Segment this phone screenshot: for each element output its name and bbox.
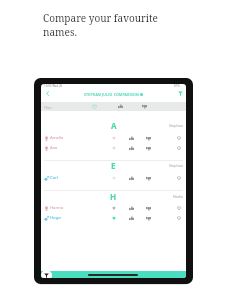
- button[interactable]: Dislike: [143, 143, 153, 153]
- button[interactable]: Favourite: [109, 203, 119, 213]
- button[interactable]: Carl: [41, 173, 186, 183]
- button[interactable]: Shortlist: [174, 173, 184, 183]
- button[interactable]: Shortlist: [174, 213, 184, 223]
- staticText: Nadia: [173, 194, 183, 199]
- button[interactable]: Shortlist: [174, 133, 184, 143]
- button[interactable]: Sort by likes: [115, 102, 125, 111]
- button[interactable]: Sort: [89, 102, 99, 111]
- button[interactable]: Dislike: [143, 213, 153, 223]
- button[interactable]: Hanna: [41, 203, 186, 213]
- button[interactable]: Shortlist: [174, 143, 184, 153]
- button[interactable]: Dislike: [143, 133, 153, 143]
- button[interactable]: Like: [126, 143, 136, 153]
- staticText: E: [111, 160, 116, 171]
- button[interactable]: Favourite: [109, 173, 119, 183]
- button[interactable]: Favourite: [109, 133, 119, 143]
- staticText: Ava: [50, 145, 58, 151]
- staticText: Stephan: [169, 163, 183, 168]
- staticText: Stephan: [169, 123, 183, 128]
- button[interactable]: Like: [126, 213, 136, 223]
- button[interactable]: Ava: [41, 143, 186, 153]
- staticText: STEPHAN JULIO COMPARISON: [84, 92, 139, 97]
- button[interactable]: Amelia: [41, 133, 186, 143]
- button[interactable]: Hugo: [41, 213, 186, 223]
- staticText: 10:03 Wed 26: [44, 84, 63, 88]
- staticText: Hanna: [50, 205, 63, 211]
- staticText: Hugo: [50, 215, 61, 221]
- button[interactable]: Shortlist: [174, 203, 184, 213]
- staticText: 81%: [174, 84, 180, 88]
- button[interactable]: Favourite: [109, 213, 119, 223]
- staticText: A: [111, 120, 117, 131]
- button[interactable]: Like: [126, 173, 136, 183]
- button[interactable]: Filter: [175, 88, 186, 99]
- staticText: Amelia: [50, 135, 64, 141]
- staticText: H: [110, 191, 117, 202]
- button[interactable]: Favourite: [109, 143, 119, 153]
- staticText: Carl: [50, 175, 58, 181]
- button[interactable]: Back: [42, 88, 53, 99]
- button[interactable]: Like: [126, 203, 136, 213]
- button[interactable]: Dislike: [143, 173, 153, 183]
- staticText: Filter: [44, 105, 52, 109]
- button[interactable]: Sort by dislikes: [139, 102, 149, 111]
- button[interactable]: Filter options: [41, 270, 52, 278]
- button[interactable]: Dislike: [143, 203, 153, 213]
- staticText: Compare your favourite names.: [43, 11, 167, 39]
- button[interactable]: Like: [126, 133, 136, 143]
